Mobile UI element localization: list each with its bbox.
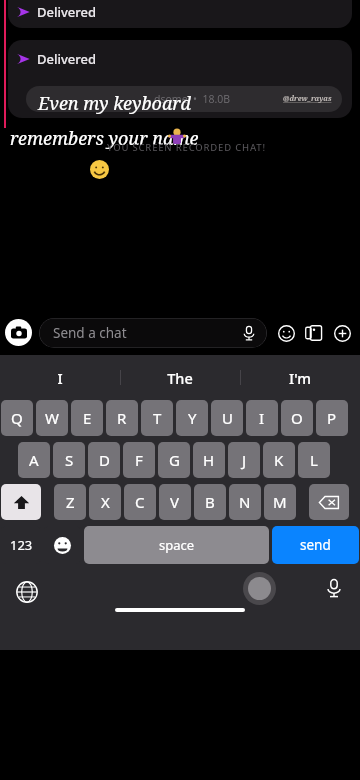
- button[interactable]: Emoji: [275, 322, 297, 344]
- button[interactable]: Backspace: [309, 484, 349, 520]
- staticText: K: [274, 450, 284, 470]
- button[interactable]: E: [71, 400, 103, 436]
- button[interactable]: Q: [1, 400, 33, 436]
- staticText: I: [259, 408, 265, 428]
- button[interactable]: Send a chat: [39, 318, 267, 348]
- staticText: J: [242, 450, 247, 470]
- button[interactable]: C: [124, 484, 156, 520]
- staticText: V: [170, 492, 180, 512]
- button[interactable]: K: [263, 442, 295, 478]
- staticText: Even my keyboard: [38, 91, 191, 116]
- staticText: @drew_rayas: [283, 94, 332, 104]
- staticText: A: [29, 450, 39, 470]
- button[interactable]: I: [0, 355, 120, 400]
- staticText: C: [135, 492, 145, 512]
- button[interactable]: W: [36, 400, 68, 436]
- staticText: U: [222, 408, 233, 428]
- button[interactable]: 123: [1, 526, 41, 564]
- button[interactable]: P: [316, 400, 348, 436]
- staticText: Q: [11, 408, 23, 428]
- staticText: Delivered: [37, 50, 97, 68]
- button[interactable]: M: [264, 484, 296, 520]
- button[interactable]: Resize keyboard: [243, 572, 276, 605]
- button[interactable]: Voice typing: [324, 578, 344, 598]
- button[interactable]: I: [246, 400, 278, 436]
- button[interactable]: Y: [176, 400, 208, 436]
- button[interactable]: B: [194, 484, 226, 520]
- button[interactable]: space: [84, 526, 269, 564]
- staticText: I'm: [289, 368, 311, 388]
- button[interactable]: F: [123, 442, 155, 478]
- button[interactable]: S: [53, 442, 85, 478]
- staticText: R: [117, 408, 127, 428]
- staticText: F: [135, 450, 143, 470]
- staticText: E: [83, 408, 92, 428]
- button[interactable]: V: [159, 484, 191, 520]
- button[interactable]: The: [120, 355, 240, 400]
- staticText: Send a chat: [53, 324, 127, 342]
- staticText: W: [45, 408, 59, 428]
- button[interactable]: Emoji keyboard: [44, 526, 81, 564]
- staticText: H: [203, 450, 215, 470]
- staticText: B: [205, 492, 215, 512]
- button[interactable]: Voice input: [241, 325, 257, 341]
- staticText: dsome • 18.0B: [154, 92, 231, 106]
- button[interactable]: H: [193, 442, 225, 478]
- staticText: T: [153, 408, 162, 428]
- staticText: L: [310, 450, 318, 470]
- button[interactable]: R: [106, 400, 138, 436]
- staticText: Z: [66, 492, 75, 512]
- button[interactable]: Add: [331, 322, 353, 344]
- button[interactable]: D: [88, 442, 120, 478]
- button[interactable]: I'm: [240, 355, 360, 400]
- button[interactable]: G: [158, 442, 190, 478]
- staticText: Delivered: [37, 3, 97, 21]
- staticText: P: [327, 408, 337, 428]
- button[interactable]: L: [298, 442, 330, 478]
- staticText: O: [291, 408, 303, 428]
- staticText: I: [57, 368, 63, 388]
- button[interactable]: Change language: [16, 581, 38, 603]
- button[interactable]: Delivered: [8, 0, 352, 28]
- button[interactable]: Shift: [1, 484, 41, 520]
- button[interactable]: X: [89, 484, 121, 520]
- button[interactable]: dsome • 18.0B: [26, 86, 342, 112]
- staticText: X: [101, 492, 110, 512]
- button[interactable]: T: [141, 400, 173, 436]
- staticText: N: [239, 492, 251, 512]
- button[interactable]: Delivered: [8, 40, 352, 118]
- staticText: Y: [188, 408, 197, 428]
- button[interactable]: N: [229, 484, 261, 520]
- staticText: send: [300, 536, 331, 554]
- staticText: The: [167, 368, 193, 388]
- button[interactable]: Camera: [5, 319, 32, 346]
- staticText: D: [99, 450, 110, 470]
- button[interactable]: J: [228, 442, 260, 478]
- staticText: remembers your name: [10, 126, 199, 151]
- button[interactable]: O: [281, 400, 313, 436]
- button[interactable]: Stickers: [303, 322, 325, 344]
- staticText: S: [65, 450, 74, 470]
- staticText: YOU SCREEN RECORDED CHAT!: [107, 141, 266, 154]
- staticText: G: [169, 450, 180, 470]
- button[interactable]: send: [272, 526, 359, 564]
- button[interactable]: Z: [54, 484, 86, 520]
- staticText: 123: [10, 536, 33, 554]
- button[interactable]: A: [18, 442, 50, 478]
- staticText: M: [273, 492, 287, 512]
- button[interactable]: U: [211, 400, 243, 436]
- staticText: space: [159, 536, 195, 554]
